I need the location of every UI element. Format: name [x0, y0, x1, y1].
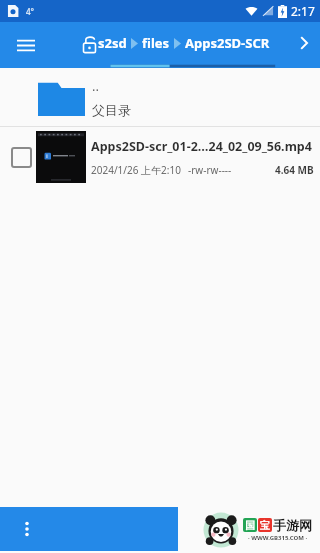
staticText: 2024/1/26 上午2:10	[91, 163, 181, 177]
button[interactable]: files	[142, 34, 170, 52]
staticText: Apps2SD-scr_01-2…24_02_09_56.mp4	[91, 138, 312, 155]
button[interactable]: ..	[0, 68, 320, 126]
staticText: 2:17	[291, 3, 315, 19]
button[interactable]: Menu	[8, 27, 44, 63]
staticText: 4.64 MB	[275, 163, 314, 177]
staticText: · WWW.GB315.COM ·	[248, 534, 308, 542]
button[interactable]: Unlocked	[74, 29, 104, 59]
button[interactable]: More options	[12, 514, 42, 544]
staticText: 4°	[26, 6, 34, 17]
button[interactable]: Select file	[0, 127, 320, 187]
staticText: 宝	[260, 519, 270, 532]
staticText: -rw-rw----	[188, 163, 232, 177]
staticText: ..	[92, 77, 99, 95]
button[interactable]: Select file	[8, 144, 34, 170]
staticText: 国	[245, 519, 255, 532]
button[interactable]: Scroll path right	[290, 29, 318, 57]
button[interactable]: Apps2SD-SCR	[185, 34, 270, 52]
staticText: 手游网	[273, 517, 312, 533]
staticText: 父目录	[92, 102, 131, 118]
button[interactable]: s2sd	[98, 34, 127, 52]
